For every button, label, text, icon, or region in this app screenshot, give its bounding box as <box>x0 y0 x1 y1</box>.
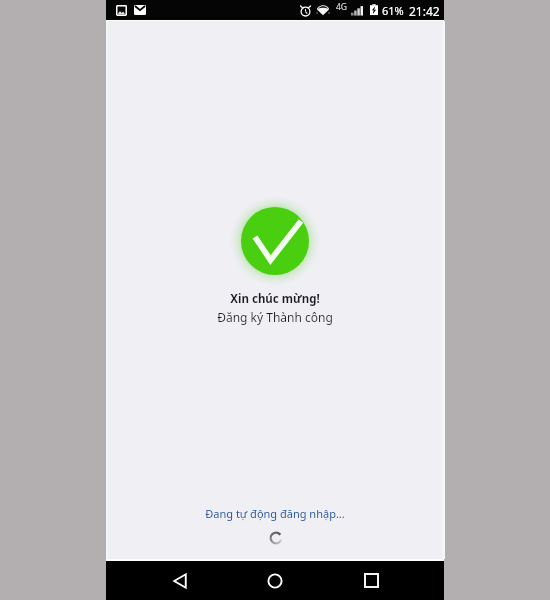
staticText: Xin chúc mừng! <box>230 291 320 307</box>
staticText: 4G <box>336 1 348 13</box>
staticText: 21:42 <box>409 3 440 19</box>
button[interactable]: Back <box>158 561 202 600</box>
button[interactable]: Đang tự động đăng nhập... <box>195 503 355 524</box>
staticText: 61% <box>382 3 404 18</box>
staticText: Đăng ký Thành công <box>217 309 333 325</box>
button[interactable]: Home <box>253 561 297 600</box>
button[interactable]: Recent apps <box>349 561 393 600</box>
staticText: Đang tự động đăng nhập... <box>205 506 345 521</box>
